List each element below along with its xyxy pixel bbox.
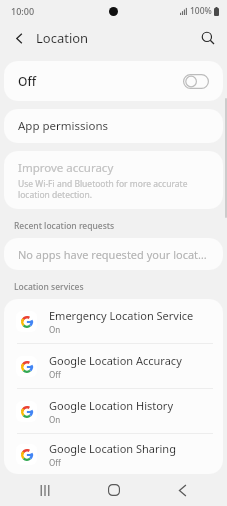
- button[interactable]: Emergency Location Service: [4, 299, 223, 343]
- staticText: 100%: [190, 5, 212, 17]
- button[interactable]: Google Location Accuracy: [4, 344, 223, 388]
- button[interactable]: App permissions: [4, 109, 223, 143]
- staticText: Off: [49, 369, 61, 380]
- staticText: On: [49, 414, 61, 425]
- staticText: No apps have requested your location..: [18, 247, 209, 262]
- button[interactable]: Search: [194, 24, 222, 52]
- button[interactable]: Google Location Sharing: [4, 434, 223, 474]
- staticText: Recent location requests: [14, 220, 115, 232]
- staticText: Off: [49, 457, 61, 468]
- staticText: Google Location Accuracy: [49, 353, 182, 368]
- staticText: Location: [36, 29, 89, 47]
- staticText: Off: [18, 73, 36, 89]
- staticText: On: [49, 324, 61, 335]
- staticText: Google Location Sharing: [49, 441, 176, 456]
- button[interactable]: Back: [159, 474, 205, 506]
- button[interactable]: Off: [4, 61, 223, 101]
- button[interactable]: Improve accuracy: [4, 151, 223, 209]
- staticText: Location services: [14, 281, 84, 293]
- button[interactable]: Back: [5, 24, 33, 52]
- staticText: Improve accuracy: [18, 160, 114, 176]
- staticText: 10:00: [11, 5, 35, 17]
- button[interactable]: Home: [91, 474, 137, 506]
- button[interactable]: Google Location History: [4, 389, 223, 433]
- staticText: Emergency Location Service: [49, 308, 194, 323]
- staticText: Google Location History: [49, 398, 174, 413]
- button[interactable]: Recents: [22, 474, 68, 506]
- staticText: Use Wi-Fi and Bluetooth for more accurat…: [18, 178, 209, 200]
- staticText: App permissions: [18, 118, 109, 134]
